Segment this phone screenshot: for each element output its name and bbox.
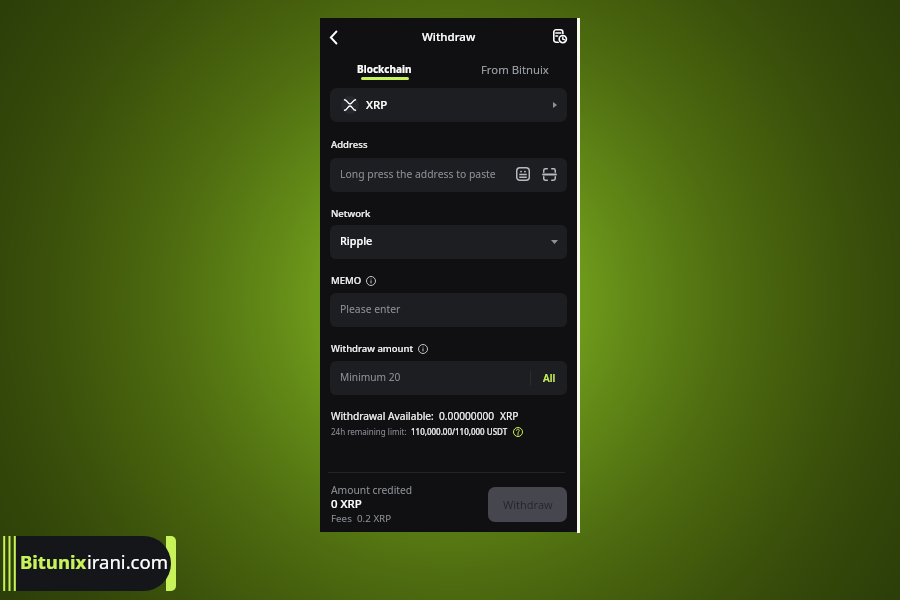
staticText: Ripple: [340, 233, 373, 248]
staticText: Blockchain: [357, 62, 412, 76]
staticText: Withdraw: [503, 497, 553, 512]
staticText: 110,000.00/110,000 USDT: [411, 426, 508, 437]
button[interactable]: All: [541, 369, 558, 387]
button[interactable]: Limit info: [513, 427, 523, 437]
staticText: XRP: [500, 409, 519, 423]
staticText: Minimum 20: [340, 370, 401, 384]
button[interactable]: Withdrawal records: [549, 25, 571, 47]
staticText: Please enter: [340, 302, 401, 316]
staticText: Amount credited: [331, 483, 413, 497]
staticText: Withdrawal Available:: [331, 409, 434, 423]
staticText: 0.2 XRP: [357, 512, 392, 525]
button[interactable]: Withdraw: [488, 487, 567, 522]
button[interactable]: XRP: [330, 88, 567, 122]
staticText: 0 XRP: [331, 496, 362, 512]
button[interactable]: Address book: [514, 165, 532, 183]
staticText: Withdraw amount: [331, 342, 414, 355]
button[interactable]: From Bitnuix: [481, 62, 549, 77]
staticText: XRP: [366, 97, 388, 113]
staticText: 0.00000000: [439, 409, 495, 423]
staticText: Long press the address to paste: [340, 167, 496, 181]
staticText: From Bitnuix: [481, 62, 549, 77]
staticText: MEMO: [331, 274, 362, 287]
staticText: Network: [331, 207, 371, 220]
button[interactable]: Back: [321, 25, 345, 49]
staticText: 24h remaining limit:: [331, 426, 407, 437]
button[interactable]: Blockchain: [357, 62, 412, 80]
staticText: Bitunix: [20, 549, 87, 574]
staticText: Withdraw: [422, 29, 476, 45]
staticText: irani.com: [87, 549, 168, 574]
button[interactable]: Scan QR code: [540, 165, 558, 183]
staticText: Address: [331, 138, 368, 151]
staticText: Fees: [331, 512, 352, 525]
staticText: All: [543, 371, 556, 385]
